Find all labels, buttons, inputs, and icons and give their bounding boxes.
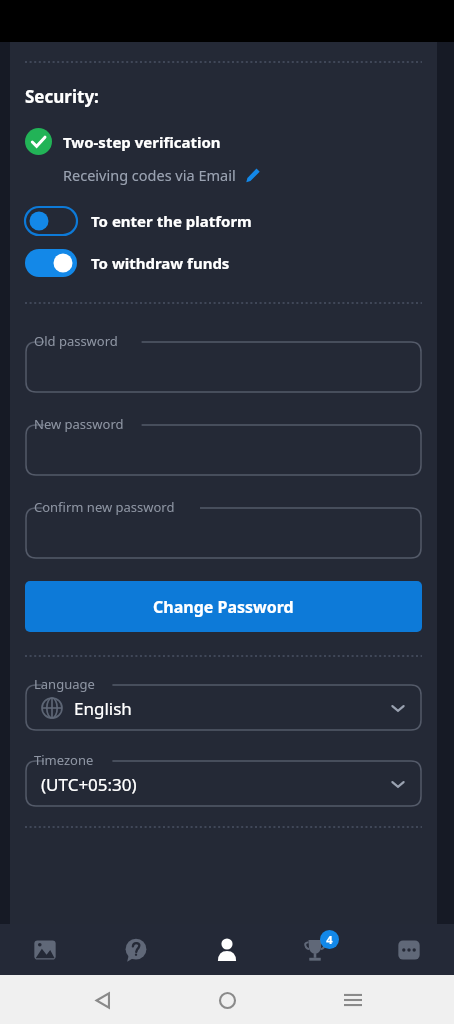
button[interactable]: Old password: [25, 333, 422, 393]
staticText: Confirm new password: [34, 498, 175, 516]
button[interactable]: Language: [25, 676, 422, 731]
staticText: English: [74, 697, 132, 720]
button[interactable]: Confirm new password: [25, 499, 422, 559]
button[interactable]: Recent apps: [329, 976, 377, 1024]
other: Edit: [244, 166, 262, 184]
staticText: Timezone: [34, 751, 94, 769]
button[interactable]: Help: [90, 924, 181, 975]
staticText: 4: [326, 932, 333, 947]
button[interactable]: More: [363, 924, 454, 975]
button[interactable]: Gallery: [0, 924, 90, 975]
staticText: To withdraw funds: [91, 253, 230, 273]
staticText: Language: [34, 675, 95, 693]
button[interactable]: Profile: [181, 924, 272, 975]
staticText: To enter the platform: [91, 211, 252, 231]
staticText: Change Password: [153, 596, 294, 618]
staticText: New password: [34, 415, 124, 433]
staticText: Receiving codes via Email: [63, 165, 236, 185]
staticText: Two-step verification: [63, 132, 221, 152]
button[interactable]: New password: [25, 416, 422, 476]
button[interactable]: Change Password: [25, 581, 422, 632]
button[interactable]: Home: [203, 976, 251, 1024]
button[interactable]: Receiving codes via Email: [10, 165, 437, 185]
staticText: Old password: [34, 332, 118, 350]
button[interactable]: Two-step verification: [10, 128, 437, 155]
button[interactable]: To enter the platform: [10, 207, 437, 235]
button[interactable]: Back: [78, 976, 126, 1024]
button[interactable]: Timezone: [25, 752, 422, 807]
staticText: (UTC+05:30): [41, 773, 137, 796]
staticText: Security:: [25, 85, 99, 108]
button[interactable]: To withdraw funds: [10, 249, 437, 277]
button[interactable]: Achievements: [272, 924, 363, 975]
